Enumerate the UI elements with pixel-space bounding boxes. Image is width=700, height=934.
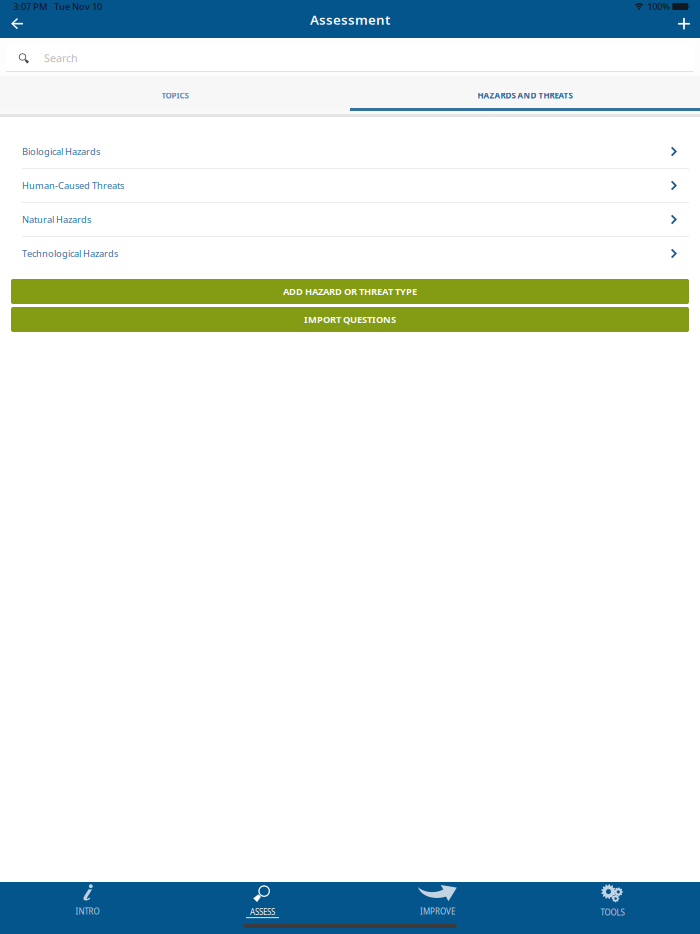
button[interactable]: INTRO bbox=[0, 882, 175, 934]
button[interactable]: TOPICS bbox=[0, 76, 350, 111]
staticText: INTRO bbox=[75, 906, 99, 917]
staticText: HAZARDS AND THREATS bbox=[477, 90, 572, 101]
button[interactable]: HAZARDS AND THREATS bbox=[350, 76, 700, 111]
staticText: ADD HAZARD OR THREAT TYPE bbox=[283, 285, 417, 298]
staticText: ASSESS bbox=[250, 906, 275, 917]
staticText: Human-Caused Threats bbox=[22, 179, 124, 192]
staticText: IMPORT QUESTIONS bbox=[304, 313, 396, 326]
staticText: 100% bbox=[647, 0, 670, 13]
staticText: Technological Hazards bbox=[22, 247, 118, 260]
staticText: 3:07 PM bbox=[13, 0, 48, 13]
staticText: Tue Nov 10 bbox=[54, 0, 102, 13]
staticText: TOOLS bbox=[600, 907, 624, 918]
staticText: Assessment bbox=[310, 11, 390, 28]
button[interactable]: Human-Caused Threats bbox=[0, 169, 700, 202]
staticText: Search bbox=[44, 51, 78, 65]
button[interactable]: Technological Hazards bbox=[0, 237, 700, 270]
button[interactable]: TOOLS bbox=[525, 882, 700, 934]
staticText: Natural Hazards bbox=[22, 213, 91, 226]
staticText: IMPROVE bbox=[420, 906, 455, 917]
button[interactable]: IMPROVE bbox=[350, 882, 525, 934]
button[interactable]: ADD HAZARD OR THREAT TYPE bbox=[11, 279, 689, 304]
staticText: TOPICS bbox=[161, 90, 188, 101]
button[interactable]: IMPORT QUESTIONS bbox=[11, 307, 689, 332]
button[interactable]: ASSESS bbox=[175, 882, 350, 934]
button[interactable]: Add bbox=[669, 18, 699, 30]
button[interactable]: Back bbox=[0, 18, 34, 30]
button[interactable]: Biological Hazards bbox=[0, 135, 700, 168]
staticText: Biological Hazards bbox=[22, 145, 100, 158]
button[interactable]: Natural Hazards bbox=[0, 203, 700, 236]
